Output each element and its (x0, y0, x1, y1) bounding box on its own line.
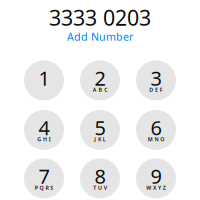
button[interactable]: 1 (24, 60, 64, 100)
button[interactable]: 8 TUV (80, 158, 120, 198)
staticText: 2 (94, 65, 105, 91)
staticText: DEF (149, 86, 163, 93)
staticText: 7 (38, 163, 49, 189)
button[interactable]: 4 GHI (24, 110, 64, 150)
button[interactable]: 6 MNO (136, 110, 176, 150)
staticText: Add Number (67, 29, 133, 44)
staticText: 8 (94, 163, 105, 189)
staticText: 9 (150, 163, 161, 189)
staticText: 6 (150, 114, 161, 141)
staticText: JKL (94, 136, 106, 143)
staticText: 5 (94, 114, 105, 141)
button[interactable]: 3 DEF (136, 60, 176, 100)
staticText: ABC (93, 86, 107, 93)
staticText: WXYZ (146, 184, 166, 191)
button[interactable]: 9 WXYZ (136, 158, 176, 198)
button[interactable]: 7 PQRS (24, 158, 64, 198)
staticText: TUV (93, 184, 107, 191)
staticText: 3 (150, 65, 161, 91)
staticText: MNO (148, 136, 164, 143)
button[interactable]: 2 ABC (80, 60, 120, 100)
staticText: GHI (37, 136, 51, 143)
button[interactable]: 5 JKL (80, 110, 120, 150)
staticText: PQRS (35, 184, 53, 191)
staticText: 4 (38, 114, 49, 141)
staticText: 3333 0203 (49, 3, 151, 32)
staticText: 1 (38, 65, 49, 91)
button[interactable]: Add Number (60, 29, 140, 43)
